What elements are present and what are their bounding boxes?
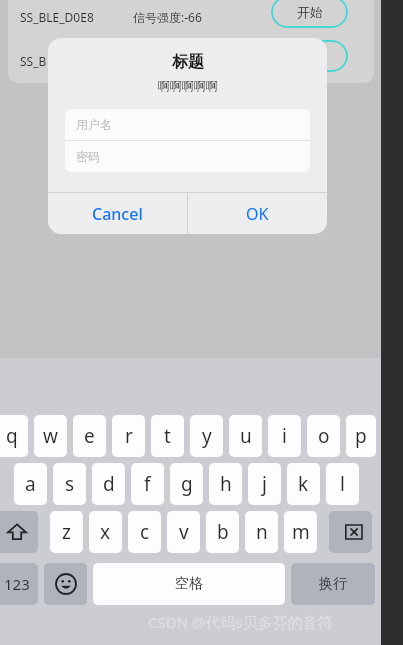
button[interactable]: b — [206, 511, 239, 553]
button[interactable]: OK — [188, 193, 327, 234]
staticText: r — [125, 423, 133, 449]
staticText: v — [179, 519, 189, 545]
button[interactable]: a — [14, 463, 47, 505]
staticText: OK — [246, 203, 269, 225]
button[interactable]: d — [92, 463, 125, 505]
button[interactable]: x — [89, 511, 122, 553]
button[interactable]: 空格 — [93, 563, 285, 605]
staticText: CSDN @代码s贝多芬的音符 — [148, 612, 333, 632]
button[interactable]: 换行 — [291, 563, 375, 605]
button[interactable]: p — [346, 415, 376, 457]
button[interactable]: s — [53, 463, 86, 505]
staticText: z — [62, 519, 71, 545]
button[interactable]: Cancel — [48, 193, 187, 234]
staticText: Cancel — [92, 203, 143, 225]
staticText: f — [144, 471, 151, 497]
button[interactable]: k — [287, 463, 320, 505]
button[interactable]: w — [34, 415, 67, 457]
button[interactable]: j — [248, 463, 281, 505]
staticText: a — [25, 471, 36, 497]
staticText: 空格 — [175, 575, 203, 593]
button[interactable]: Emoji — [44, 563, 87, 605]
button[interactable]: 123 — [0, 563, 38, 605]
button[interactable]: Backspace — [329, 511, 372, 553]
button[interactable]: 开始 — [271, 40, 348, 72]
staticText: y — [202, 423, 212, 449]
staticText: i — [282, 423, 287, 449]
staticText: u — [240, 423, 252, 449]
button[interactable]: 开始 — [271, 0, 348, 28]
staticText: g — [181, 471, 193, 497]
button[interactable]: g — [170, 463, 203, 505]
button[interactable]: e — [73, 415, 106, 457]
button[interactable]: o — [307, 415, 340, 457]
staticText: t — [164, 423, 171, 449]
staticText: l — [340, 471, 345, 497]
button[interactable]: 用户名 — [65, 109, 310, 140]
button[interactable]: u — [229, 415, 262, 457]
staticText: 标题 — [172, 52, 204, 72]
staticText: h — [220, 471, 232, 497]
staticText: p — [355, 423, 367, 449]
staticText: 啊啊啊啊啊 — [158, 78, 218, 93]
staticText: 换行 — [319, 575, 347, 593]
staticText: m — [292, 519, 310, 545]
staticText: s — [65, 471, 75, 497]
button[interactable]: i — [268, 415, 301, 457]
staticText: j — [262, 471, 267, 497]
staticText: 123 — [4, 574, 30, 594]
staticText: d — [103, 471, 115, 497]
staticText: q — [6, 423, 18, 449]
button[interactable]: 密码 — [65, 141, 310, 172]
button[interactable]: q — [0, 415, 28, 457]
button[interactable]: n — [245, 511, 278, 553]
staticText: 信号强度:-66 — [133, 9, 202, 25]
staticText: o — [318, 423, 330, 449]
button[interactable]: v — [167, 511, 200, 553]
button[interactable]: r — [112, 415, 145, 457]
staticText: 密码 — [76, 149, 100, 164]
staticText: 用户名 — [76, 117, 112, 132]
staticText: x — [100, 519, 111, 545]
button[interactable]: m — [284, 511, 317, 553]
staticText: b — [217, 519, 229, 545]
staticText: w — [43, 423, 58, 449]
button[interactable]: t — [151, 415, 184, 457]
staticText: k — [298, 471, 309, 497]
button[interactable]: Shift — [0, 511, 38, 553]
button[interactable]: h — [209, 463, 242, 505]
button[interactable]: f — [131, 463, 164, 505]
button[interactable]: c — [128, 511, 161, 553]
staticText: n — [256, 519, 268, 545]
staticText: 开始 — [297, 4, 323, 20]
staticText: c — [140, 519, 150, 545]
button[interactable]: y — [190, 415, 223, 457]
button[interactable]: z — [50, 511, 83, 553]
staticText: SS_BLE_D0E8 — [20, 9, 94, 25]
staticText: SS_B — [20, 53, 47, 69]
staticText: e — [84, 423, 95, 449]
button[interactable]: l — [326, 463, 359, 505]
